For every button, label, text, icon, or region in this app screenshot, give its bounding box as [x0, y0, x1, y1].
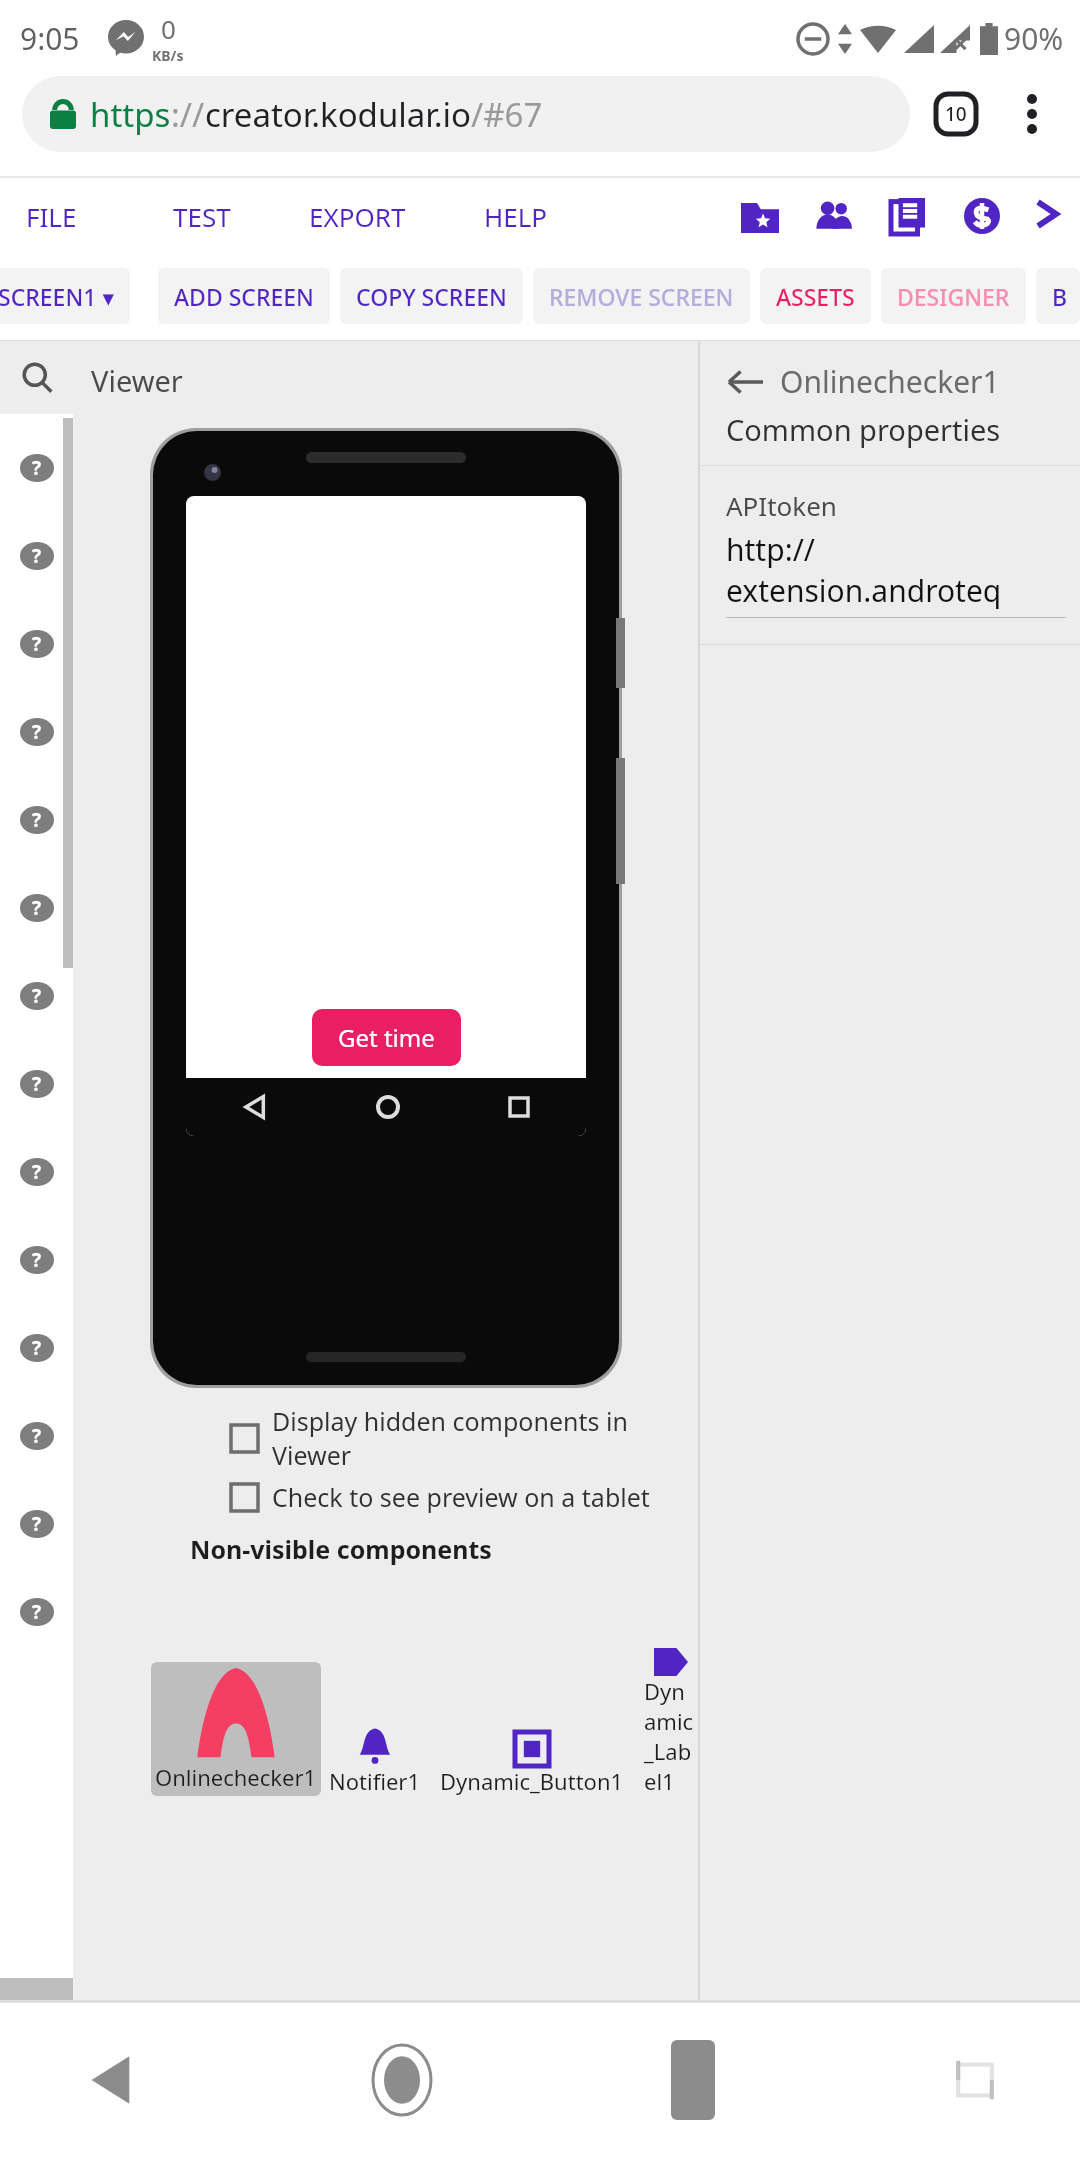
button[interactable]: COPY SCREEN [340, 268, 523, 324]
staticText: ? [32, 719, 42, 745]
button[interactable]: https [22, 76, 910, 152]
staticText: TEST [173, 199, 231, 234]
staticText: ? [32, 1071, 42, 1097]
staticText: creator.kodular.io [205, 92, 471, 137]
staticText: :// [171, 92, 205, 137]
button[interactable]: ASSETS [760, 268, 871, 324]
staticText: ? [32, 983, 42, 1009]
button[interactable]: More [1034, 196, 1074, 236]
staticText: 0 [161, 11, 176, 46]
button[interactable]: Assets folder [738, 194, 782, 238]
staticText: ? [32, 1511, 42, 1537]
button[interactable]: Dynamic_Label1 [642, 1580, 699, 1796]
staticText: ? [32, 895, 42, 921]
staticText: KB/s [152, 46, 184, 65]
button[interactable]: Component [0, 1480, 73, 1568]
button[interactable]: Notifier1 [327, 1670, 422, 1796]
button[interactable]: Component [0, 952, 73, 1040]
staticText: Check to see preview on a tablet [272, 1480, 650, 1514]
button[interactable]: Recent apps [643, 2030, 743, 2130]
button[interactable]: Back [726, 362, 766, 402]
staticText: EXPORT [309, 199, 406, 234]
button[interactable]: Component [0, 688, 73, 776]
staticText: 9:05 [20, 18, 80, 59]
button[interactable]: FILE [16, 191, 87, 242]
staticText: ? [32, 543, 42, 569]
button[interactable]: Component [0, 1040, 73, 1128]
button[interactable]: Collaborators [812, 194, 856, 238]
button[interactable]: Search [0, 341, 73, 414]
staticText: https [90, 92, 171, 137]
button[interactable]: Dynamic_Button1 [438, 1670, 626, 1796]
staticText: Non-visible components [73, 1532, 609, 1566]
button[interactable]: SCREEN1 ▾ [0, 268, 130, 324]
button[interactable]: Component [0, 424, 73, 512]
button[interactable]: Component [0, 1304, 73, 1392]
staticText: APItoken [726, 488, 837, 523]
button[interactable]: B [1036, 268, 1080, 324]
staticText: Viewer [91, 361, 183, 400]
button[interactable]: TEST [163, 191, 241, 242]
staticText: Display hidden components in Viewer [272, 1404, 699, 1472]
button[interactable]: Check to see preview on a tablet [231, 1480, 650, 1514]
staticText: Get time [338, 1021, 435, 1054]
button[interactable]: HELP [474, 191, 558, 242]
staticText: Common properties [726, 410, 1001, 449]
button[interactable]: More options [1006, 88, 1058, 140]
button[interactable]: Documentation [886, 194, 930, 238]
button[interactable]: Component [0, 1568, 73, 1656]
button[interactable]: Monetize [960, 194, 1004, 238]
staticText: ? [32, 1335, 42, 1361]
button[interactable]: EXPORT [299, 191, 416, 242]
button[interactable]: Rotate [930, 2035, 1020, 2125]
button[interactable]: Component [0, 512, 73, 600]
staticText: ASSETS [776, 281, 855, 312]
staticText: Notifier1 [329, 1766, 420, 1796]
button[interactable]: REMOVE SCREEN [533, 268, 750, 324]
staticText: DESIGNER [897, 281, 1010, 312]
staticText: ? [32, 807, 42, 833]
button[interactable]: Back [60, 2030, 160, 2130]
staticText: ? [32, 1159, 42, 1185]
button[interactable]: DESIGNER [881, 268, 1026, 324]
button[interactable]: Onlinechecker1 [151, 1662, 321, 1796]
button[interactable]: ADD SCREEN [158, 268, 330, 324]
staticText: Onlinechecker1 [780, 361, 1000, 402]
staticText: REMOVE SCREEN [549, 281, 734, 312]
staticText: Dynamic_Button1 [440, 1766, 624, 1796]
button[interactable]: Component [0, 1128, 73, 1216]
staticText: 10 [945, 101, 967, 127]
button[interactable]: Component [0, 864, 73, 952]
button[interactable]: Tabs [928, 86, 984, 142]
button[interactable]: Home [347, 2025, 457, 2135]
staticText: Dynamic_Label1 [644, 1676, 697, 1796]
staticText: COPY SCREEN [356, 281, 507, 312]
button[interactable]: Component [0, 1392, 73, 1480]
staticText: ? [32, 1247, 42, 1273]
button[interactable]: Get time [312, 1009, 461, 1066]
staticText: ? [32, 631, 42, 657]
staticText: ? [32, 455, 42, 481]
staticText: 90% [1004, 18, 1064, 59]
staticText: HELP [484, 199, 548, 234]
button[interactable]: Component [0, 776, 73, 864]
staticText: http://extension.androteq [726, 529, 1066, 611]
button[interactable]: Component [0, 600, 73, 688]
staticText: B [1052, 281, 1064, 312]
staticText: /#67 [471, 92, 543, 137]
staticText: ? [32, 1599, 42, 1625]
button[interactable]: Component [0, 1216, 73, 1304]
staticText: ADD SCREEN [174, 281, 314, 312]
button[interactable]: Display hidden components in Viewer [231, 1404, 699, 1472]
staticText: ? [32, 1423, 42, 1449]
staticText: FILE [26, 199, 77, 234]
staticText: SCREEN1 ▾ [0, 281, 114, 312]
staticText: Onlinechecker1 [155, 1762, 317, 1792]
